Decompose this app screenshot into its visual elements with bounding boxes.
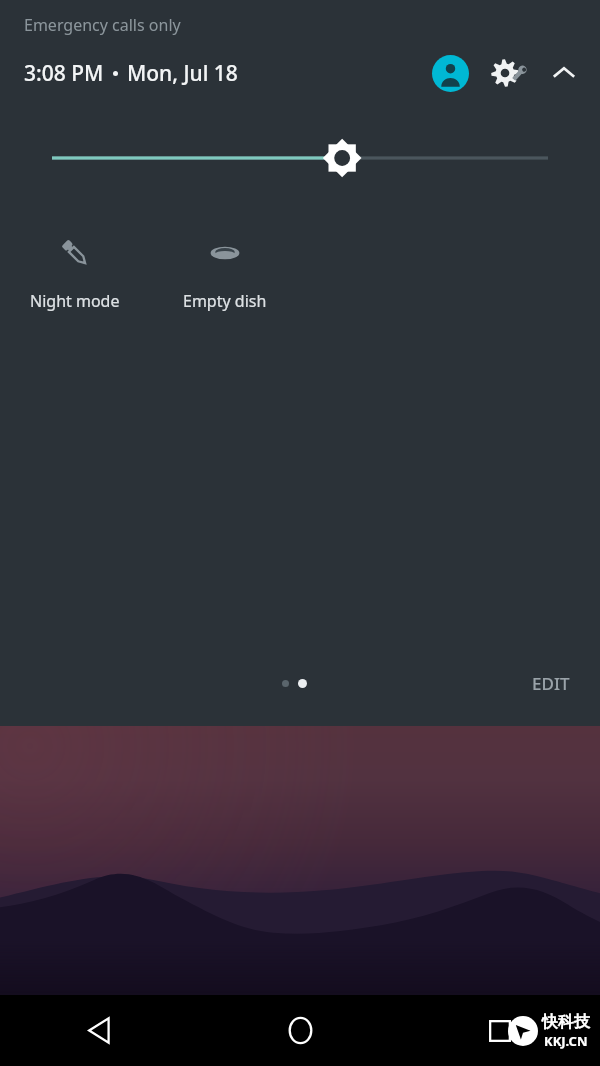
staticText: EDIT (532, 672, 570, 695)
staticText: KKJ.CN (544, 1032, 588, 1050)
button[interactable]: Collapse (542, 51, 586, 95)
button[interactable]: EDIT (512, 662, 590, 705)
button[interactable]: Recent apps (400, 995, 600, 1066)
staticText: 3:08 PM (24, 59, 104, 88)
staticText: Emergency calls only (24, 14, 181, 36)
button[interactable]: Home (200, 995, 400, 1066)
button[interactable]: Brightness (52, 134, 548, 182)
staticText: Night mode (30, 290, 120, 312)
button[interactable]: Back (0, 995, 200, 1066)
button[interactable]: Empty dish (150, 224, 300, 318)
staticText: Mon, Jul 18 (127, 59, 238, 88)
button[interactable]: Night mode (0, 224, 150, 318)
staticText: 快科技 (542, 1012, 590, 1032)
button[interactable]: Settings (486, 50, 532, 96)
staticText: Empty dish (183, 290, 267, 312)
button[interactable]: User account (428, 51, 472, 95)
